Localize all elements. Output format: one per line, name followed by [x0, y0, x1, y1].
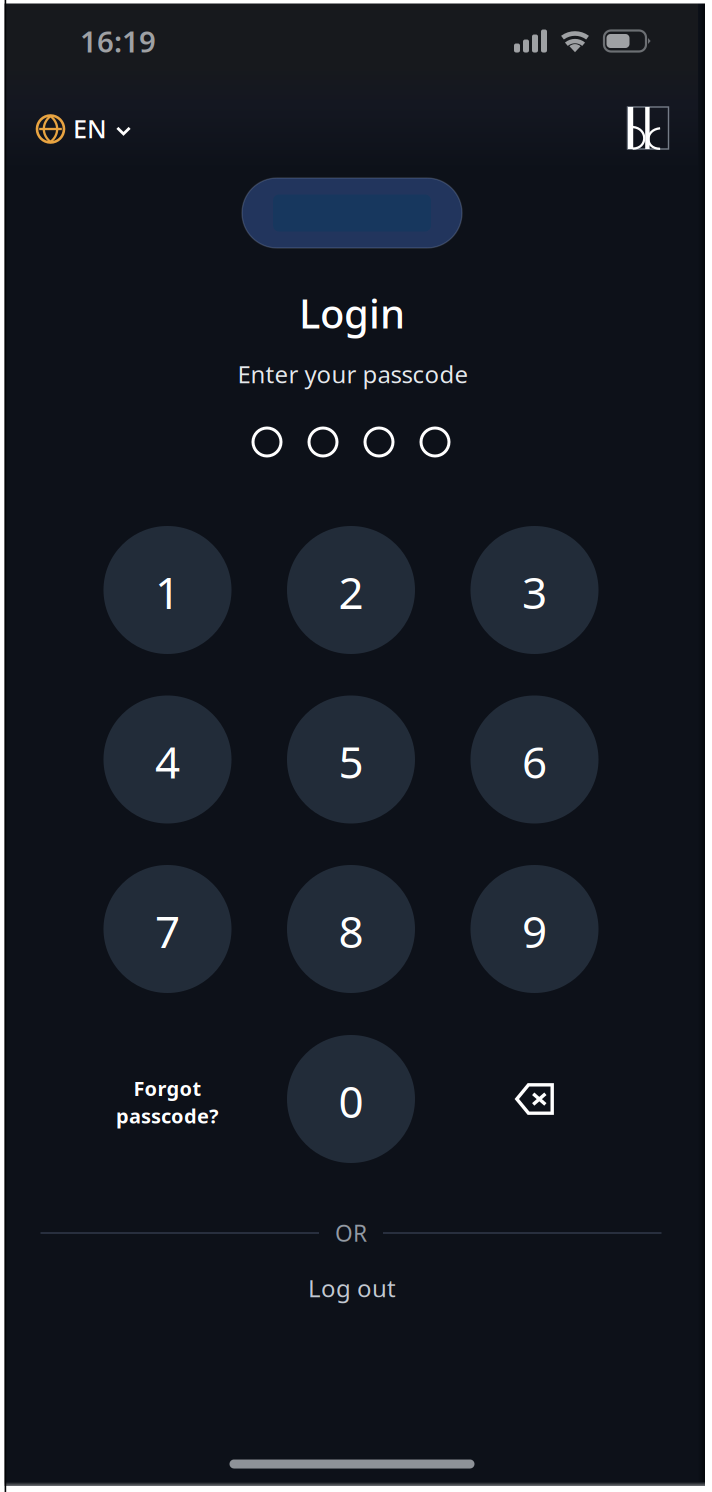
button[interactable]: Delete — [470, 1035, 598, 1163]
button[interactable]: 5 — [287, 695, 415, 823]
button[interactable]: 6 — [470, 695, 598, 823]
staticText: 7 — [155, 902, 180, 960]
button[interactable]: EN — [29, 100, 139, 158]
staticText: Log out — [308, 1272, 396, 1304]
button[interactable]: 4 — [103, 695, 231, 823]
staticText: EN — [73, 112, 107, 145]
staticText: 5 — [338, 732, 363, 791]
button[interactable]: 3 — [470, 526, 598, 654]
staticText: 8 — [338, 902, 363, 960]
button[interactable]: 9 — [470, 865, 598, 993]
button[interactable]: 0 — [287, 1035, 415, 1163]
staticText: Forgot — [133, 1075, 201, 1101]
staticText: passcode? — [116, 1102, 219, 1129]
staticText: 0 — [338, 1072, 363, 1130]
button[interactable]: 7 — [103, 865, 231, 993]
staticText: 6 — [522, 732, 547, 791]
button[interactable]: 8 — [287, 865, 415, 993]
button[interactable]: 2 — [287, 526, 415, 654]
button[interactable]: Log out — [280, 1258, 424, 1318]
staticText: Enter your passcode — [237, 358, 468, 390]
staticText: 4 — [155, 732, 180, 791]
button[interactable]: blc — [619, 99, 676, 157]
staticText: 9 — [522, 902, 547, 960]
staticText: OR — [335, 1218, 367, 1248]
staticText: 1 — [155, 563, 180, 621]
staticText: Login — [299, 286, 405, 339]
button[interactable]: Forgot — [103, 1035, 231, 1163]
staticText: 3 — [522, 563, 547, 621]
staticText: 2 — [338, 563, 363, 621]
button[interactable]: 1 — [103, 526, 231, 654]
staticText: 16:19 — [80, 21, 156, 60]
